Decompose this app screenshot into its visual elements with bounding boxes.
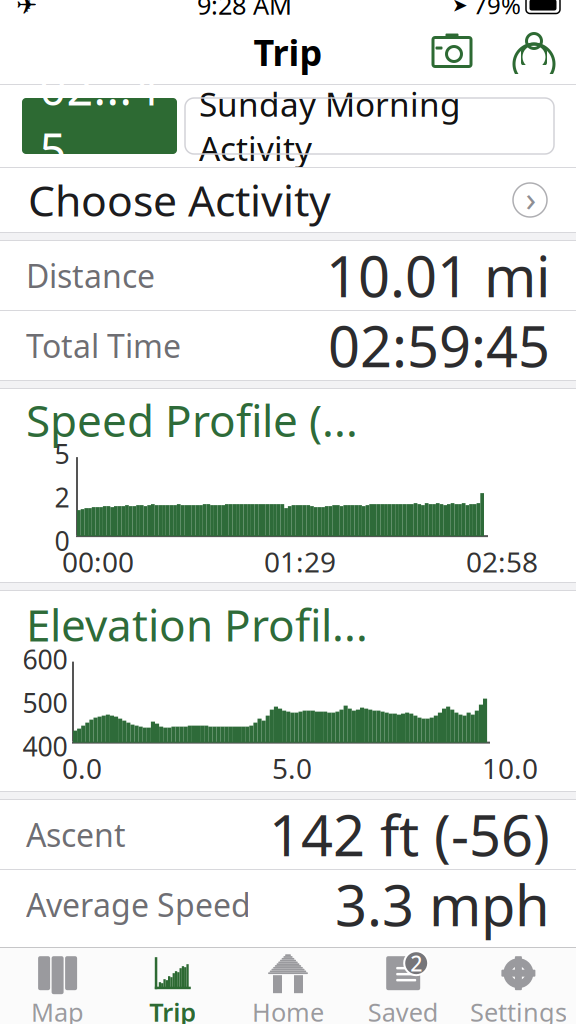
- staticText: Home: [252, 995, 324, 1024]
- staticText: 2: [54, 479, 69, 515]
- staticText: 500: [22, 685, 67, 720]
- button[interactable]: Sunday Morning Activity: [185, 98, 554, 154]
- staticText: 9:28 AM: [197, 0, 292, 22]
- staticText: Speed Profile (...: [26, 391, 358, 449]
- button[interactable]: 02...45: [22, 98, 177, 154]
- staticText: 02:58: [466, 543, 538, 580]
- staticText: Elevation Profil...: [26, 595, 368, 654]
- staticText: Saved: [368, 995, 439, 1024]
- staticText: 10.01 mi: [326, 238, 550, 313]
- staticText: 142 ft (-56): [269, 797, 550, 872]
- staticText: ›: [525, 175, 536, 221]
- staticText: Choose Activity: [28, 172, 331, 228]
- staticText: 00:00: [62, 543, 134, 580]
- button[interactable]: Map: [0, 948, 115, 1024]
- staticText: Sunday Morning Activity: [199, 82, 461, 170]
- button[interactable]: Home: [230, 948, 346, 1024]
- button[interactable]: Share Live Location: [512, 30, 556, 74]
- staticText: Ascent: [26, 813, 126, 856]
- staticText: 0.0: [62, 750, 102, 787]
- staticText: 5.0: [272, 750, 312, 787]
- staticText: 0: [54, 523, 69, 558]
- staticText: 02...45: [39, 56, 159, 180]
- staticText: Settings: [470, 995, 567, 1024]
- staticText: 400: [22, 728, 67, 764]
- button[interactable]: Trip: [115, 948, 230, 1024]
- staticText: 79%: [473, 0, 521, 21]
- staticText: 02:59:45: [328, 308, 550, 383]
- staticText: ➤: [452, 0, 468, 16]
- staticText: 2: [410, 949, 422, 977]
- staticText: ✈: [16, 0, 37, 19]
- staticText: 10.0: [482, 750, 538, 787]
- staticText: Trip: [149, 995, 196, 1024]
- button[interactable]: Camera: [430, 30, 474, 74]
- button[interactable]: Settings: [461, 948, 576, 1024]
- button[interactable]: 2: [346, 948, 461, 1024]
- staticText: 01:29: [264, 543, 336, 580]
- staticText: Map: [31, 995, 84, 1024]
- staticText: Distance: [26, 254, 155, 297]
- staticText: Total Time: [26, 324, 181, 367]
- staticText: 3.3 mph: [335, 867, 550, 942]
- staticText: Average Speed: [26, 883, 251, 926]
- button[interactable]: Choose Activity: [0, 168, 576, 232]
- staticText: 5: [54, 436, 69, 471]
- staticText: 600: [22, 641, 67, 677]
- staticText: Trip: [253, 28, 322, 76]
